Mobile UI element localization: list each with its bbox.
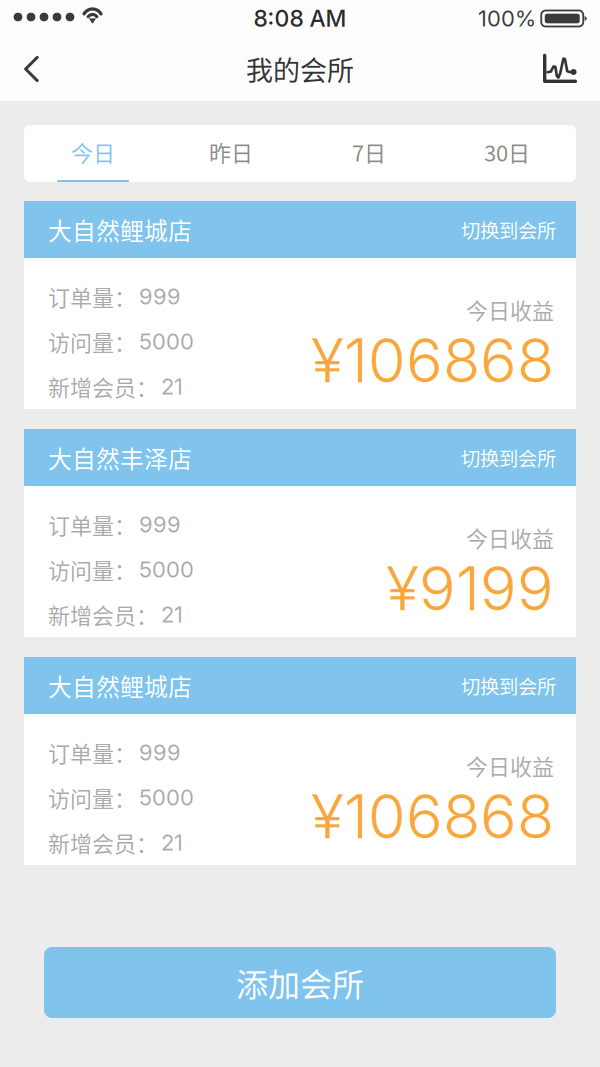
- button[interactable]: 30日: [438, 125, 576, 182]
- staticText: 添加会所: [236, 959, 364, 1006]
- staticText: 今日: [71, 136, 115, 168]
- staticText: 订单量：: [48, 281, 136, 312]
- button[interactable]: 大自然鲤城店: [24, 201, 576, 258]
- staticText: 大自然鲤城店: [48, 212, 192, 247]
- button[interactable]: 今日: [24, 125, 162, 182]
- staticText: 5000: [139, 328, 194, 355]
- staticText: 8:08 AM: [253, 5, 346, 32]
- staticText: 切换到会所: [461, 215, 556, 243]
- staticText: 今日收益: [466, 294, 554, 325]
- button[interactable]: 大自然鲤城店: [24, 657, 576, 714]
- staticText: 5000: [139, 784, 194, 811]
- staticText: 订单量：: [48, 509, 136, 540]
- staticText: 今日收益: [466, 522, 554, 553]
- staticText: ¥9199: [386, 551, 554, 625]
- staticText: 999: [139, 283, 181, 310]
- button[interactable]: 7日: [300, 125, 438, 182]
- staticText: 21: [161, 601, 183, 628]
- staticText: 7日: [352, 136, 386, 168]
- staticText: 新增会员：: [48, 371, 158, 402]
- button[interactable]: 昨日: [162, 125, 300, 182]
- staticText: 100%: [478, 5, 536, 32]
- staticText: 今日收益: [466, 750, 554, 781]
- staticText: 访问量：: [48, 782, 136, 813]
- staticText: ¥106868: [311, 323, 554, 397]
- staticText: 昨日: [209, 136, 253, 168]
- staticText: ¥106868: [311, 779, 554, 853]
- staticText: 访问量：: [48, 554, 136, 585]
- staticText: 订单量：: [48, 737, 136, 768]
- staticText: 5000: [139, 556, 194, 583]
- staticText: 新增会员：: [48, 827, 158, 858]
- staticText: 切换到会所: [461, 671, 556, 699]
- staticText: 新增会员：: [48, 599, 158, 630]
- staticText: 大自然丰泽店: [48, 440, 192, 475]
- button[interactable]: Statistics: [521, 37, 577, 101]
- staticText: 我的会所: [246, 49, 354, 89]
- staticText: 21: [161, 373, 183, 400]
- button[interactable]: 添加会所: [44, 947, 556, 1018]
- staticText: 999: [139, 739, 181, 766]
- staticText: 30日: [484, 136, 530, 168]
- staticText: 切换到会所: [461, 443, 556, 471]
- staticText: 999: [139, 511, 181, 538]
- button[interactable]: Back: [24, 37, 80, 101]
- staticText: 大自然鲤城店: [48, 668, 192, 703]
- staticText: 21: [161, 829, 183, 856]
- button[interactable]: 大自然丰泽店: [24, 429, 576, 486]
- staticText: 访问量：: [48, 326, 136, 357]
